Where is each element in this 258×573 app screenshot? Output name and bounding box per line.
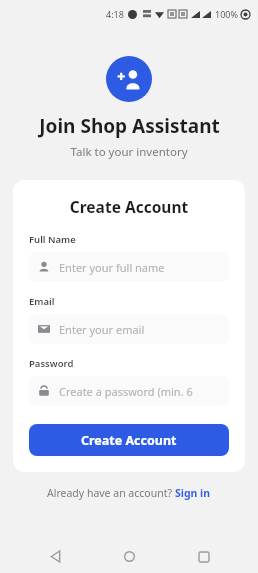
staticText: Create a password (min. 6 — [59, 384, 193, 399]
staticText: Password — [29, 357, 74, 370]
staticText: Already have an account? — [47, 486, 175, 500]
button[interactable]: Back — [35, 540, 75, 573]
staticText: Join Shop Assistant — [39, 113, 220, 139]
staticText: Enter your email — [59, 322, 145, 337]
staticText: Enter your full name — [59, 260, 165, 275]
staticText: Email — [29, 295, 55, 308]
button[interactable]: Sign in — [175, 486, 211, 500]
staticText: Sign in — [175, 486, 211, 500]
staticText: Full Name — [29, 233, 76, 246]
button[interactable]: Create a password (min. 6 — [29, 376, 229, 406]
staticText: 4:18 — [106, 8, 124, 20]
staticText: 100% — [215, 8, 238, 20]
staticText: Create Account — [29, 196, 229, 217]
button[interactable]: Enter your full name — [29, 252, 229, 282]
button[interactable]: Create Account — [29, 424, 229, 456]
button[interactable]: Recent apps — [184, 540, 224, 573]
staticText: Create Account — [81, 432, 177, 449]
button[interactable]: Home — [109, 540, 149, 573]
staticText: Talk to your inventory — [70, 144, 188, 160]
button[interactable]: Enter your email — [29, 314, 229, 344]
